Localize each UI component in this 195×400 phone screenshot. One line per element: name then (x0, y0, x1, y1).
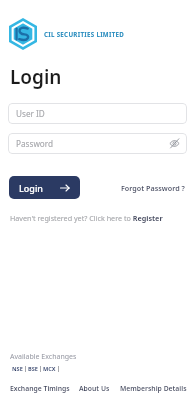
staticText: Login (19, 182, 43, 194)
staticText: Forgot Password ? (121, 183, 185, 193)
button[interactable]: Show password (169, 138, 180, 149)
button[interactable]: Login (9, 176, 80, 199)
staticText: Haven't registered yet? Click here to Re… (10, 213, 163, 223)
button[interactable]: Membership Details (120, 384, 187, 393)
staticText: NSE (12, 365, 23, 373)
staticText: Login (10, 64, 62, 90)
staticText: Exchange Timings (10, 384, 70, 393)
button[interactable]: Haven't registered yet? Click here to Re… (10, 213, 163, 223)
staticText: BSE (28, 365, 38, 373)
button[interactable]: About Us (79, 384, 110, 393)
button[interactable]: Forgot Password ? (121, 183, 185, 193)
staticText: Available Exchanges (10, 352, 77, 362)
staticText: MCX (43, 365, 56, 373)
button[interactable]: Password (8, 133, 187, 154)
button[interactable]: User ID (8, 103, 187, 124)
staticText: Membership Details (120, 384, 187, 393)
staticText: User ID (16, 108, 45, 119)
staticText: About Us (79, 384, 110, 393)
staticText: CIL SECURITIES LIMITED (44, 30, 125, 38)
button[interactable]: Exchange Timings (10, 384, 70, 393)
staticText: Password (16, 138, 54, 149)
